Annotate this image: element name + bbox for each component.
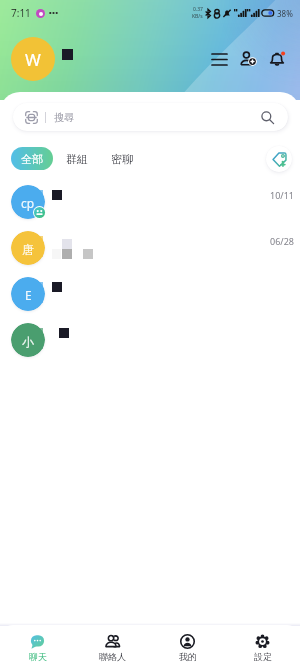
- button[interactable]: 聊天: [0, 625, 75, 666]
- staticText: W: [25, 48, 41, 71]
- staticText: 我的: [179, 651, 197, 662]
- staticText: 全部: [21, 152, 43, 166]
- button[interactable]: 設定: [225, 625, 300, 666]
- staticText: 0.37: [193, 6, 203, 13]
- staticText: 聯絡人: [99, 651, 126, 662]
- staticText: 密聊: [111, 152, 133, 166]
- button[interactable]: Menu: [205, 45, 233, 73]
- button[interactable]: E: [0, 271, 300, 317]
- staticText: 唐: [22, 242, 34, 257]
- button[interactable]: 全部: [11, 147, 53, 170]
- staticText: 群組: [66, 152, 88, 166]
- button[interactable]: Tags: [266, 146, 292, 172]
- staticText: 小: [22, 334, 34, 349]
- staticText: cp: [21, 195, 35, 211]
- staticText: 聊天: [29, 651, 47, 662]
- button[interactable]: 聯絡人: [75, 625, 150, 666]
- staticText: 7:11: [11, 6, 31, 20]
- button[interactable]: cp: [0, 179, 300, 225]
- staticText: 搜尋: [54, 111, 74, 124]
- staticText: 10/11: [270, 189, 294, 201]
- button[interactable]: Notifications: [263, 45, 291, 73]
- button[interactable]: 唐: [0, 225, 300, 271]
- staticText: E: [25, 287, 32, 303]
- staticText: 38%: [277, 8, 293, 19]
- button[interactable]: 搜尋: [13, 103, 288, 131]
- button[interactable]: 我的: [150, 625, 225, 666]
- button[interactable]: 群組: [60, 148, 94, 170]
- button[interactable]: 密聊: [105, 148, 139, 170]
- staticText: 06/28: [270, 235, 294, 247]
- staticText: 設定: [254, 651, 272, 662]
- button[interactable]: 小: [0, 317, 300, 363]
- staticText: KB/s: [192, 13, 203, 20]
- button[interactable]: W: [11, 37, 55, 81]
- button[interactable]: Add friend: [234, 45, 262, 73]
